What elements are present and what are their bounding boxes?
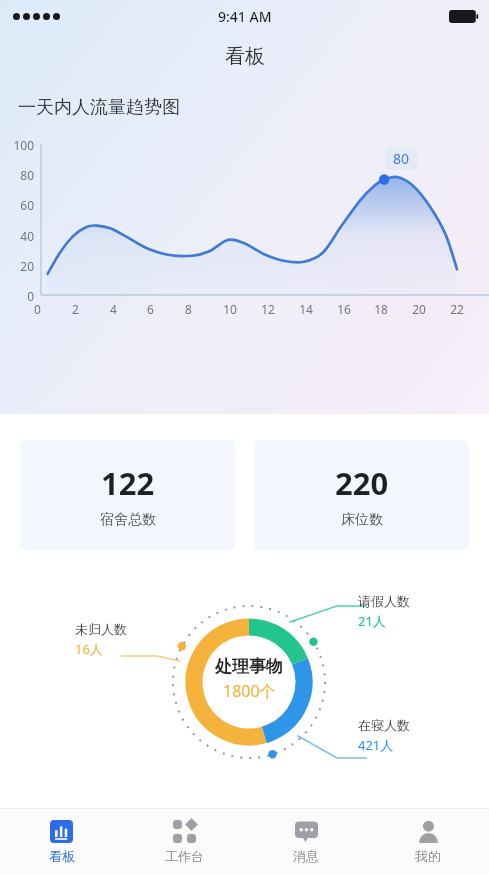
staticText: 2 [72,301,79,317]
button[interactable]: 我的 [367,809,489,875]
staticText: 6 [147,301,154,317]
staticText: 8 [185,301,192,317]
staticText: 处理事物 [215,656,283,677]
button[interactable]: 工作台 [123,809,245,875]
other: 消息 [295,820,318,843]
staticText: 14 [299,301,313,317]
staticText: 20 [2,258,34,274]
button[interactable]: 122 [20,440,235,550]
staticText: 请假人数 [358,593,410,609]
staticText: 看板 [49,848,75,864]
staticText: 40 [2,228,34,244]
staticText: 宿舍总数 [100,511,156,529]
staticText: 在寝人数 [358,717,410,733]
staticText: 工作台 [165,848,204,864]
staticText: 122 [101,462,155,504]
button[interactable]: 看板 [0,809,123,875]
staticText: 80 [2,167,34,183]
staticText: 22 [450,301,464,317]
staticText: 20 [412,301,426,317]
staticText: 消息 [293,848,319,864]
staticText: 一天内人流量趋势图 [18,96,180,119]
staticText: 未归人数 [75,621,127,637]
other: 我的 [417,820,440,843]
staticText: 看板 [225,44,265,69]
staticText: 16人 [75,640,103,658]
staticText: 100 [2,137,34,153]
staticText: 10 [223,301,237,317]
staticText: 421人 [358,736,394,754]
staticText: 80 [393,149,410,168]
staticText: 18 [374,301,388,317]
button[interactable]: 消息 [245,809,367,875]
staticText: 220 [335,462,389,504]
staticText: 我的 [415,848,441,864]
staticText: 床位数 [341,511,383,529]
staticText: 1800个 [223,680,276,702]
staticText: 21人 [358,612,386,630]
staticText: 0 [34,301,41,317]
staticText: 12 [261,301,275,317]
staticText: 4 [110,301,117,317]
staticText: 60 [2,197,34,213]
button[interactable]: 220 [254,440,469,550]
other: 工作台 [173,820,196,843]
staticText: 16 [337,301,351,317]
other: 看板 [50,820,73,843]
staticText: 9:41 AM [218,7,272,26]
staticText: 0 [2,288,34,304]
